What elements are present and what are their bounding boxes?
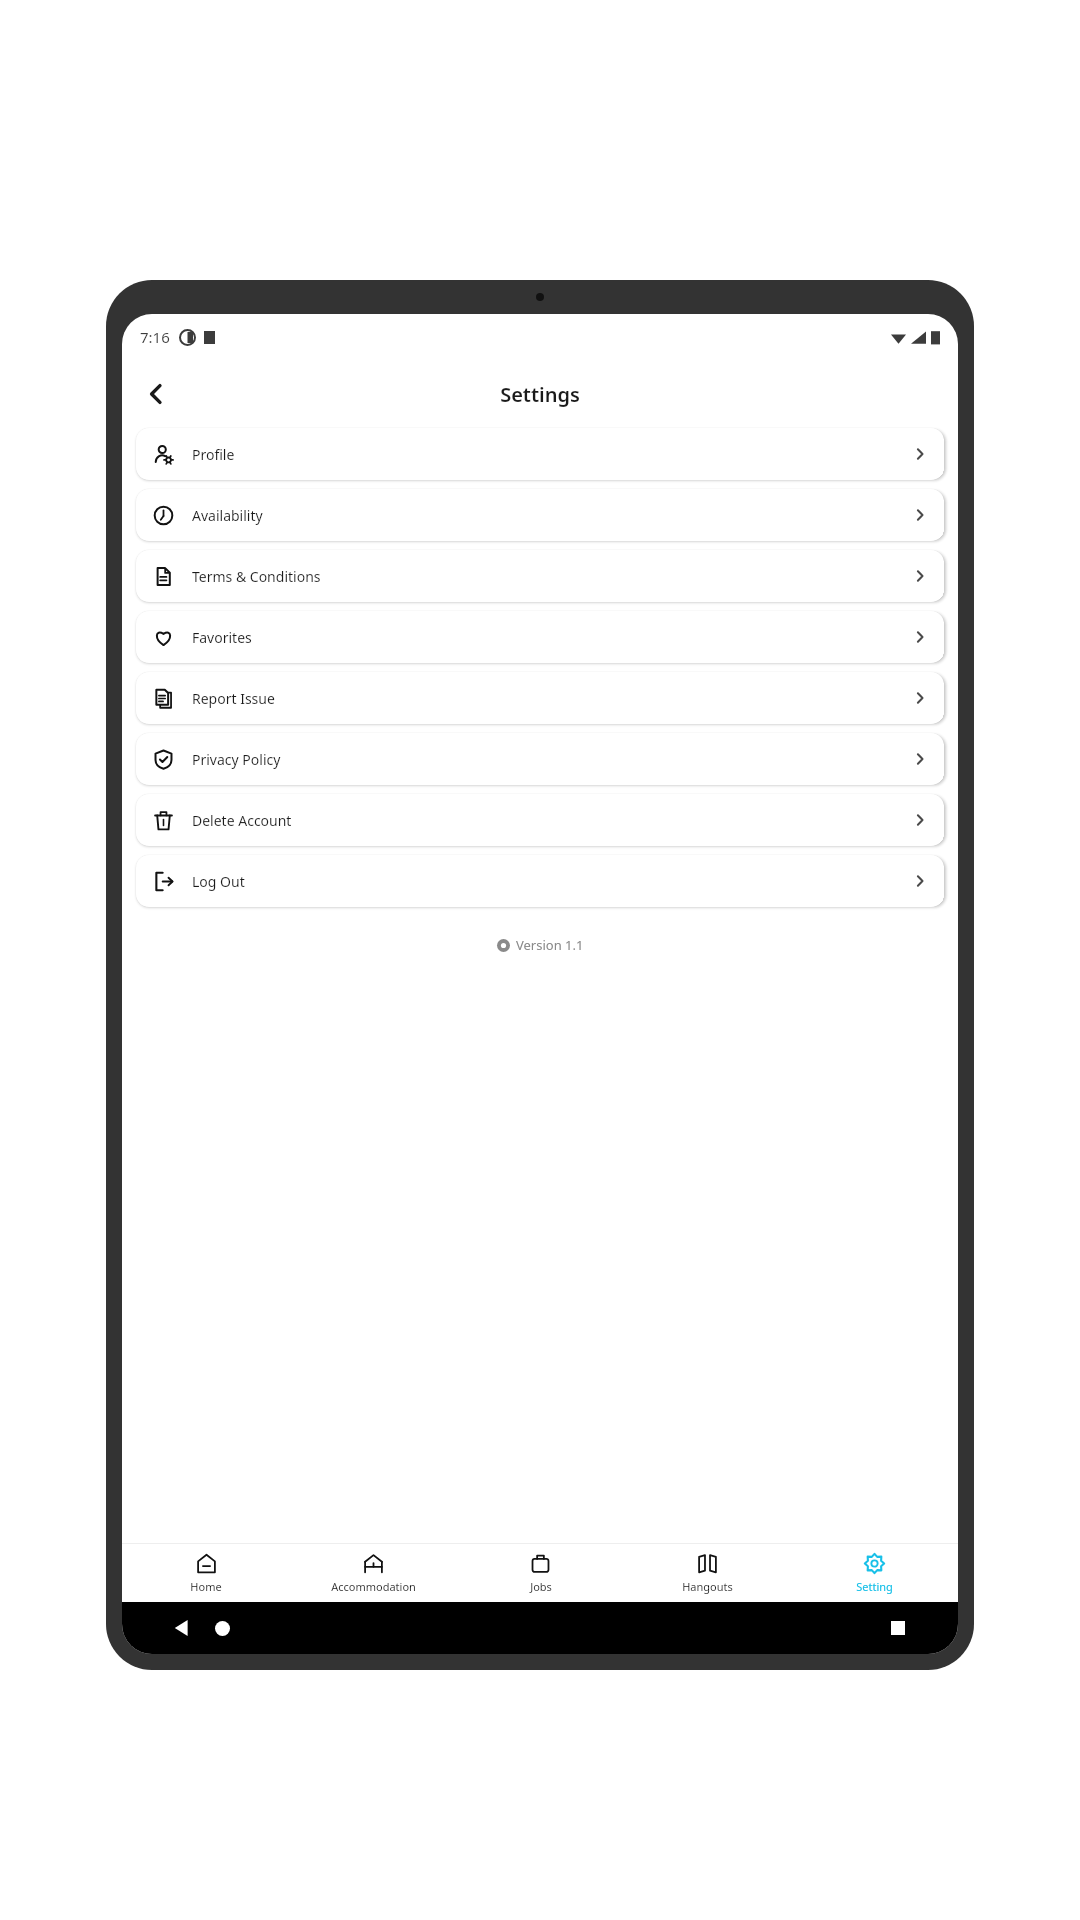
staticText: Profile [192,445,235,464]
button[interactable]: Accommodation [290,1544,457,1602]
staticText: Log Out [192,872,245,891]
staticText: Setting [856,1579,893,1594]
staticText: Privacy Policy [192,750,281,769]
staticText: Report Issue [192,689,275,708]
staticText: Jobs [530,1579,552,1594]
staticText: Delete Account [192,811,292,830]
button[interactable]: Favorites [136,611,944,663]
button[interactable]: Jobs [457,1544,624,1602]
staticText: 7:16 [140,327,170,347]
button[interactable]: Back [162,1608,202,1648]
button[interactable]: Privacy Policy [136,733,944,785]
staticText: Hangouts [682,1579,733,1594]
button[interactable]: Recent apps [878,1608,918,1648]
button[interactable]: Delete Account [136,794,944,846]
staticText: Version 1.1 [516,936,584,954]
button[interactable]: Hangouts [624,1544,791,1602]
staticText: Favorites [192,628,252,647]
button[interactable]: Availability [136,489,944,541]
button[interactable]: Report Issue [136,672,944,724]
button[interactable]: Home [122,1544,290,1602]
staticText: Terms & Conditions [192,567,321,586]
staticText: Availability [192,506,263,525]
button[interactable]: Home [202,1608,242,1648]
button[interactable]: Profile [136,428,944,480]
staticText: Home [190,1579,222,1594]
staticText: Settings [500,381,580,408]
button[interactable]: Terms & Conditions [136,550,944,602]
button[interactable]: Setting [791,1544,958,1602]
staticText: Accommodation [331,1579,416,1594]
button[interactable]: Back [132,370,180,418]
button[interactable]: Log Out [136,855,944,907]
